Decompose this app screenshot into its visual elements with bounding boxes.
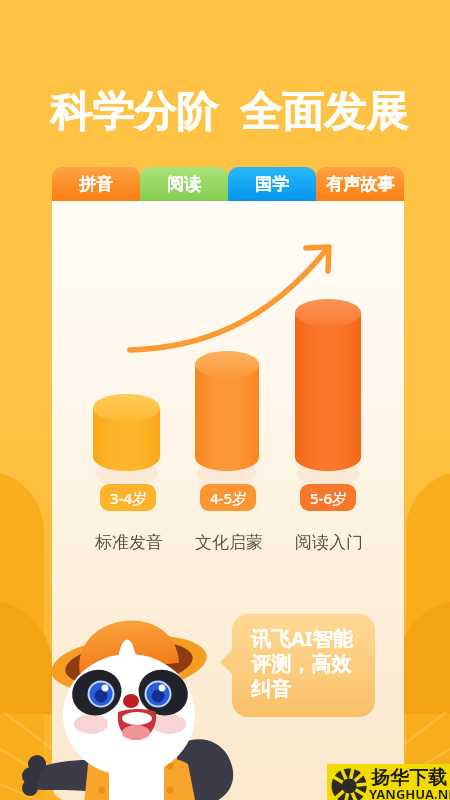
staticText: 文化启蒙	[195, 532, 263, 553]
staticText: 扬华下载	[371, 766, 447, 790]
staticText: 5-6岁	[310, 488, 347, 508]
button[interactable]: 拼音	[52, 167, 140, 201]
staticText: 标准发音	[95, 532, 163, 553]
staticText: 拼音	[79, 174, 113, 195]
button[interactable]: 阅读	[140, 167, 228, 201]
button[interactable]: 有声故事	[316, 167, 404, 201]
staticText: 3-4岁	[110, 488, 147, 508]
staticText: 讯飞AI智能	[251, 625, 353, 652]
staticText: YANGHUA.NET	[369, 785, 450, 800]
staticText: 有声故事	[326, 174, 394, 195]
staticText: 阅读	[167, 174, 201, 195]
staticText: 国学	[255, 174, 289, 195]
staticText: 纠音	[251, 677, 291, 702]
staticText: 科学分阶 全面发展	[50, 81, 408, 138]
staticText: 阅读入门	[295, 532, 363, 553]
button[interactable]: 国学	[228, 167, 316, 201]
staticText: 4-5岁	[210, 488, 247, 508]
staticText: 评测，高效	[251, 652, 351, 677]
